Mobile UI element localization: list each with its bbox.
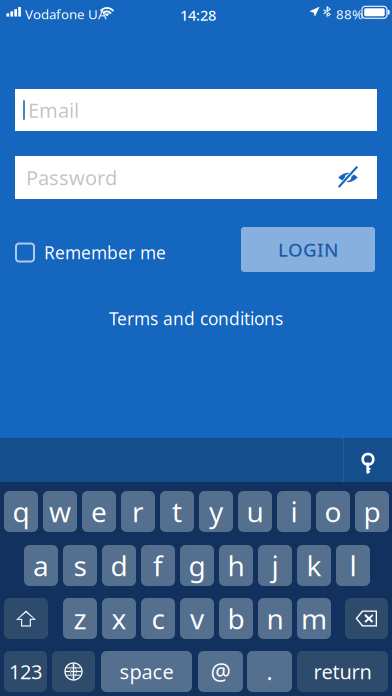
button[interactable]: j	[258, 545, 292, 586]
staticText: b	[227, 600, 244, 637]
button[interactable]: i	[277, 491, 311, 532]
staticText: o	[324, 493, 341, 530]
staticText: LOGIN	[278, 237, 338, 262]
staticText: e	[91, 493, 107, 530]
button[interactable]: v	[180, 598, 214, 639]
staticText: d	[110, 547, 127, 584]
button[interactable]: Shift	[4, 598, 48, 639]
button[interactable]: x	[102, 598, 136, 639]
staticText: k	[306, 547, 321, 584]
button[interactable]: t	[160, 491, 194, 532]
staticText: 88%	[336, 5, 363, 23]
button[interactable]: d	[102, 545, 136, 586]
staticText: y	[209, 493, 223, 530]
button[interactable]: at sign	[198, 651, 243, 692]
staticText: r	[132, 493, 144, 530]
staticText: .	[266, 656, 272, 686]
button[interactable]: Passwords	[344, 438, 392, 482]
staticText: Password	[26, 164, 117, 191]
button[interactable]: n	[258, 598, 292, 639]
button[interactable]: s	[63, 545, 97, 586]
staticText: 123	[9, 658, 42, 685]
button[interactable]: m	[297, 598, 331, 639]
button[interactable]: w	[43, 491, 77, 532]
button[interactable]: y	[199, 491, 233, 532]
staticText: c	[151, 600, 164, 637]
staticText: g	[188, 547, 205, 584]
button[interactable]: period	[247, 651, 292, 692]
staticText: Email	[28, 97, 79, 123]
staticText: Vodafone UA	[25, 5, 107, 23]
staticText: m	[301, 600, 327, 637]
button[interactable]: Terms and conditions	[0, 307, 392, 330]
button[interactable]: o	[316, 491, 350, 532]
button[interactable]: u	[238, 491, 272, 532]
staticText: v	[190, 600, 204, 637]
staticText: n	[266, 600, 283, 637]
button[interactable]: space	[101, 651, 192, 692]
staticText: z	[73, 600, 86, 637]
button[interactable]: h	[219, 545, 253, 586]
button[interactable]: q	[4, 491, 38, 532]
button[interactable]: g	[180, 545, 214, 586]
button[interactable]: Show password	[326, 156, 370, 199]
button[interactable]: Numbers	[4, 651, 47, 692]
button[interactable]: r	[121, 491, 155, 532]
staticText: s	[73, 547, 86, 584]
button[interactable]: l	[336, 545, 370, 586]
button[interactable]: c	[141, 598, 175, 639]
button[interactable]: return	[297, 651, 388, 692]
staticText: Remember me	[44, 241, 166, 264]
staticText: f	[153, 547, 163, 584]
button[interactable]: b	[219, 598, 253, 639]
button[interactable]: e	[82, 491, 116, 532]
staticText: j	[271, 547, 278, 584]
button[interactable]: Delete	[345, 598, 388, 639]
button[interactable]: k	[297, 545, 331, 586]
button[interactable]: f	[141, 545, 175, 586]
staticText: p	[363, 493, 380, 530]
staticText: space	[119, 658, 173, 685]
staticText: a	[33, 547, 49, 584]
button[interactable]: p	[355, 491, 389, 532]
staticText: q	[12, 493, 29, 530]
staticText: i	[290, 493, 297, 530]
button[interactable]: Remember me	[16, 233, 166, 272]
staticText: @	[210, 656, 230, 686]
staticText: 14:28	[180, 5, 216, 25]
button[interactable]: LOGIN	[241, 227, 375, 272]
staticText: l	[349, 547, 356, 584]
button[interactable]: Next keyboard	[52, 651, 95, 692]
staticText: w	[49, 493, 71, 530]
staticText: Terms and conditions	[109, 307, 283, 330]
staticText: x	[111, 600, 126, 637]
staticText: h	[227, 547, 244, 584]
staticText: t	[172, 493, 182, 530]
staticText: u	[246, 493, 263, 530]
staticText: return	[313, 658, 371, 685]
button[interactable]: a	[24, 545, 58, 586]
button[interactable]: z	[63, 598, 97, 639]
